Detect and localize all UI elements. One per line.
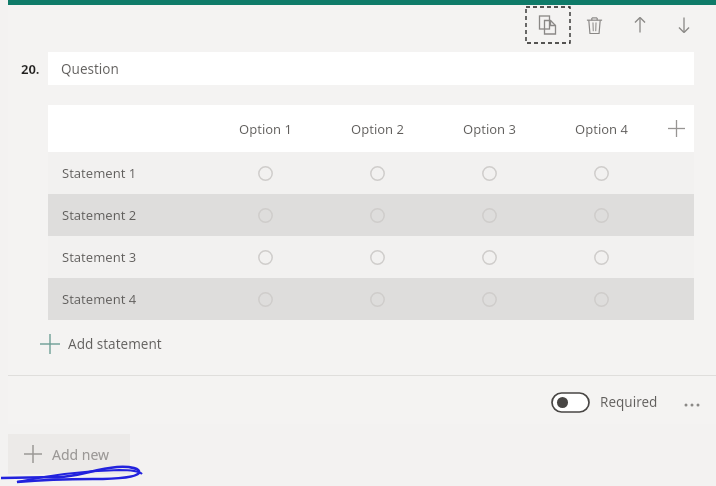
staticText: Option 1: [239, 120, 292, 138]
button[interactable]: Delete question: [578, 9, 610, 41]
button[interactable]: More options: [678, 391, 706, 419]
staticText: Option 3: [463, 120, 516, 138]
button[interactable]: Option 1: [217, 105, 313, 152]
button[interactable]: [254, 246, 276, 268]
button[interactable]: [478, 162, 500, 184]
button[interactable]: [478, 288, 500, 310]
button[interactable]: Statement 3: [48, 236, 694, 278]
button[interactable]: [590, 204, 612, 226]
staticText: Add new: [52, 445, 110, 464]
button[interactable]: Statement 4: [48, 278, 694, 320]
staticText: Statement 1: [62, 164, 137, 182]
staticText: 20.: [21, 60, 40, 78]
button[interactable]: [254, 288, 276, 310]
button[interactable]: Add option: [661, 113, 691, 143]
button[interactable]: [590, 288, 612, 310]
button[interactable]: Move question down: [668, 9, 700, 41]
staticText: Option 2: [351, 120, 404, 138]
button[interactable]: Statement 1: [48, 152, 694, 194]
button[interactable]: [590, 162, 612, 184]
button[interactable]: Move question up: [624, 9, 656, 41]
button[interactable]: Copy question: [526, 7, 570, 43]
staticText: Statement 4: [62, 290, 137, 308]
staticText: Question: [61, 60, 119, 78]
button[interactable]: Statement 2: [48, 194, 694, 236]
staticText: Statement 3: [62, 248, 137, 266]
button[interactable]: [254, 204, 276, 226]
button[interactable]: [366, 204, 388, 226]
button[interactable]: Option 4: [553, 105, 649, 152]
button[interactable]: Add new: [8, 434, 130, 474]
staticText: Option 4: [575, 120, 628, 138]
button[interactable]: [478, 246, 500, 268]
button[interactable]: [254, 162, 276, 184]
button[interactable]: [478, 204, 500, 226]
button[interactable]: [590, 246, 612, 268]
button[interactable]: [366, 246, 388, 268]
button[interactable]: [366, 162, 388, 184]
staticText: Required: [600, 393, 658, 411]
button[interactable]: Question: [48, 52, 694, 85]
button[interactable]: [366, 288, 388, 310]
staticText: Statement 2: [62, 206, 137, 224]
button[interactable]: Required: [552, 391, 658, 413]
button[interactable]: Add statement: [40, 330, 162, 358]
button[interactable]: Option 3: [441, 105, 537, 152]
button[interactable]: Option 2: [329, 105, 425, 152]
staticText: Add statement: [68, 335, 162, 353]
